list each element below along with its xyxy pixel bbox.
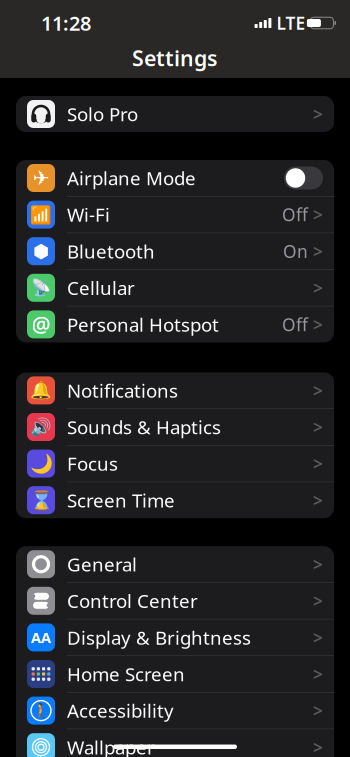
button[interactable]: Solo Pro [16,96,334,132]
staticText: Cellular [67,275,135,300]
staticText: ⬢ [33,241,49,262]
staticText: 📶 [30,205,52,224]
button[interactable]: 📡 [16,270,334,306]
button[interactable]: Wallpaper [16,729,334,757]
staticText: Off [282,313,308,336]
staticText: > [313,240,323,263]
button[interactable]: 🔔 [16,372,334,409]
staticText: 🔔 [30,380,52,400]
staticText: Accessibility [67,698,174,723]
staticText: 🌙 [29,453,52,474]
button[interactable]: Control Center [16,583,334,619]
staticText: > [313,699,323,722]
staticText: Wallpaper [67,735,155,757]
staticText: Settings [132,44,218,72]
staticText: @ [31,310,50,338]
staticText: 11:28 [41,10,91,36]
staticText: > [313,102,323,125]
staticText: > [313,589,323,612]
staticText: Off [282,203,308,226]
staticText: > [313,203,323,226]
button[interactable]: General [16,546,334,583]
staticText: Personal Hotspot [67,312,219,337]
button[interactable]: AA [16,619,334,656]
staticText: ⌛ [29,489,52,511]
staticText: Airplane Mode [67,166,196,190]
staticText: > [313,553,323,576]
staticText: Focus [67,451,118,476]
staticText: > [313,489,323,512]
staticText: Sounds & Haptics [67,415,221,439]
staticText: > [313,313,323,336]
staticText: Screen Time [67,488,175,513]
staticText: Wi-Fi [67,202,110,227]
button[interactable]: Home Screen [16,656,334,693]
staticText: > [313,736,323,757]
staticText: Bluetooth [67,239,155,264]
staticText: > [313,662,323,685]
staticText: LTE [276,11,305,34]
button[interactable]: ✈ [16,160,334,197]
staticText: > [313,452,323,475]
staticText: > [313,415,323,438]
staticText: On [283,240,308,263]
staticText: > [313,379,323,402]
staticText: > [313,276,323,299]
button[interactable]: 🚶 [16,693,334,729]
button[interactable]: 🔊 [16,409,334,446]
button[interactable]: ⬢ [16,233,334,270]
staticText: > [313,626,323,649]
staticText: General [67,552,137,577]
button[interactable]: 🌙 [16,446,334,482]
button[interactable]: 📶 [16,197,334,233]
staticText: AA [31,628,51,647]
staticText: 🚶 [32,702,50,719]
staticText: Display & Brightness [67,625,251,650]
staticText: 🔊 [30,417,52,437]
staticText: ✈ [32,167,49,189]
staticText: Home Screen [67,662,185,686]
staticText: 📡 [31,279,51,297]
button[interactable]: ⌛ [16,482,334,518]
button[interactable]: @ [16,306,334,342]
staticText: Notifications [67,378,178,403]
staticText: Solo Pro [67,102,138,126]
staticText: Control Center [67,588,198,613]
